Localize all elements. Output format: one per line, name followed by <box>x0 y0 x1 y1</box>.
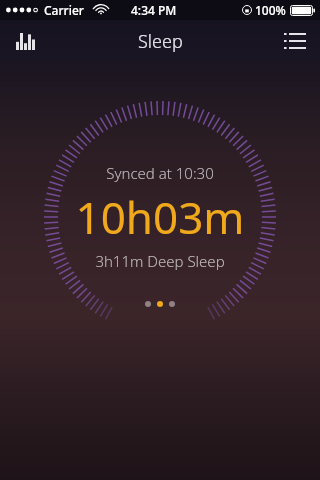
button[interactable]: Statistics <box>8 24 42 58</box>
staticText: 10h03m <box>75 187 245 247</box>
staticText: Sleep <box>138 29 183 54</box>
staticText: 3h11m Deep Sleep <box>95 251 225 271</box>
button[interactable]: Page 3 <box>169 301 175 307</box>
staticText: Carrier <box>44 2 84 18</box>
staticText: 100% <box>255 2 286 18</box>
button[interactable]: Menu <box>278 24 312 58</box>
staticText: Synced at 10:30 <box>106 163 214 183</box>
button[interactable]: Page 1 <box>145 301 151 307</box>
staticText: 4:34 PM <box>131 2 177 18</box>
button[interactable]: Page 2 <box>157 301 163 307</box>
